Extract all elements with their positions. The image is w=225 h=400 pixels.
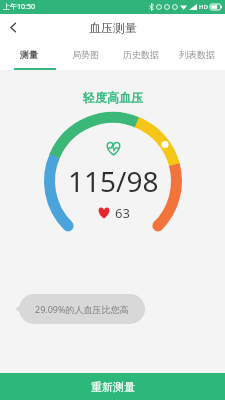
staticText: 重新测量 <box>91 380 135 394</box>
staticText: 局势图 <box>72 49 99 60</box>
button[interactable]: 29.09%的人血压比您高 <box>19 294 145 324</box>
staticText: 29.09%的人血压比您高 <box>35 303 129 315</box>
staticText: 历史数据 <box>123 49 159 60</box>
button[interactable]: 局势图 <box>57 41 113 68</box>
button[interactable]: 重新测量 <box>0 373 225 400</box>
staticText: 115/98 <box>68 162 159 200</box>
staticText: 测量 <box>20 49 38 60</box>
staticText: 63 <box>115 204 130 222</box>
staticText: 列表数据 <box>179 49 215 60</box>
button[interactable]: Back <box>0 14 27 41</box>
staticText: 上午10:50 <box>3 2 35 12</box>
button[interactable]: 列表数据 <box>169 41 225 68</box>
staticText: 血压测量 <box>89 20 137 35</box>
button[interactable]: 历史数据 <box>113 41 169 68</box>
staticText: HD <box>199 3 208 11</box>
staticText: 轻度高血压 <box>83 90 143 105</box>
button[interactable]: 测量 <box>0 41 57 68</box>
